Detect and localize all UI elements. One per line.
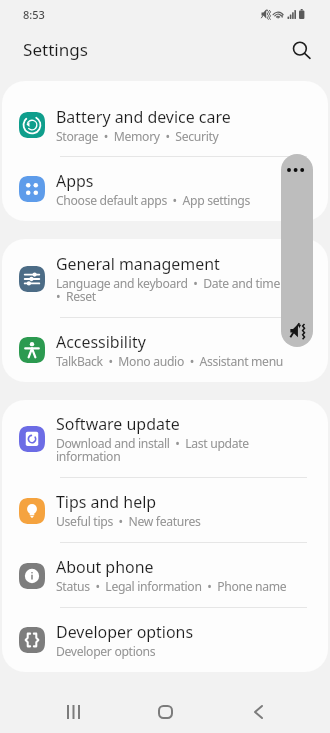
- staticText: Useful tips • New features: [56, 513, 201, 530]
- button[interactable]: Software update: [2, 400, 328, 478]
- staticText: Choose default apps • App settings: [56, 192, 251, 209]
- staticText: Developer options: [56, 621, 194, 643]
- button[interactable]: Battery and device care: [2, 93, 328, 157]
- staticText: General management: [56, 253, 220, 275]
- staticText: TalkBack • Mono audio • Assistant menu: [56, 353, 284, 370]
- button[interactable]: Tips and help: [2, 478, 328, 543]
- staticText: Developer options: [56, 643, 156, 660]
- button[interactable]: Developer options: [2, 608, 328, 672]
- staticText: 8:53: [23, 7, 45, 22]
- staticText: Status • Legal information • Phone name: [56, 578, 287, 595]
- staticText: Tips and help: [56, 491, 157, 513]
- staticText: Accessibility: [56, 331, 146, 353]
- button[interactable]: Recent apps: [45, 689, 101, 733]
- button[interactable]: Home: [137, 689, 193, 733]
- button[interactable]: General management: [2, 240, 328, 318]
- staticText: Battery and device care: [56, 106, 231, 128]
- staticText: Storage • Memory • Security: [56, 128, 219, 145]
- button[interactable]: Search: [288, 36, 316, 64]
- button[interactable]: Accessibility: [2, 318, 328, 382]
- staticText: Language and keyboard • Date and time • …: [56, 275, 288, 305]
- staticText: Download and install • Last update infor…: [56, 435, 288, 465]
- staticText: About phone: [56, 556, 154, 578]
- button[interactable]: Back: [230, 689, 286, 733]
- button[interactable]: Apps: [2, 157, 328, 221]
- staticText: Software update: [56, 413, 180, 435]
- staticText: Apps: [56, 170, 94, 192]
- button[interactable]: Floating assistive menu: [281, 154, 313, 347]
- staticText: Settings: [23, 38, 89, 61]
- button[interactable]: About phone: [2, 543, 328, 608]
